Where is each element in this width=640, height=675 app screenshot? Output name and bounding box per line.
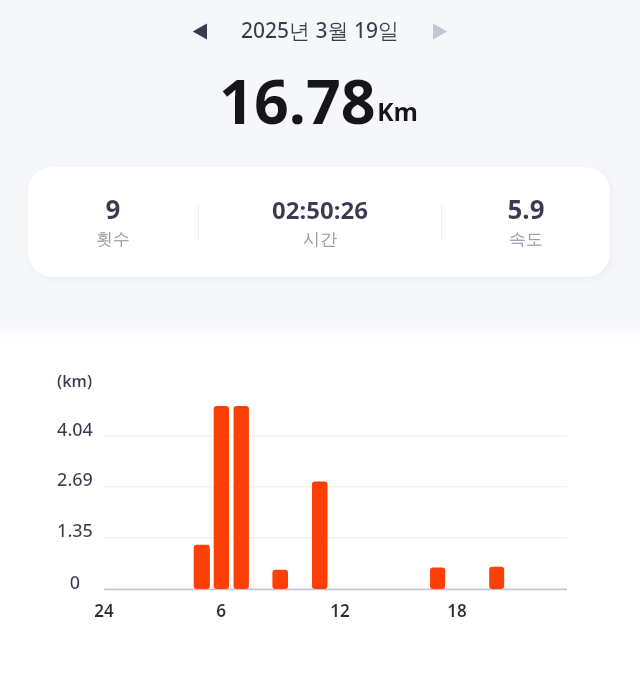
- button[interactable]: 5.9: [442, 167, 610, 277]
- staticText: 02:50:26: [199, 193, 441, 226]
- button[interactable]: 9: [28, 167, 198, 277]
- staticText: 0: [15, 570, 135, 595]
- staticText: 12: [300, 599, 380, 622]
- staticText: 5.9: [442, 191, 610, 226]
- button[interactable]: 02:50:26: [199, 167, 441, 277]
- staticText: 속도: [442, 229, 610, 250]
- staticText: 9: [28, 191, 198, 226]
- staticText: 4.04: [15, 417, 135, 442]
- button[interactable]: Next day: [421, 14, 456, 49]
- button[interactable]: Previous day: [183, 14, 218, 49]
- staticText: 1.35: [15, 518, 135, 543]
- staticText: 16.78: [219, 59, 376, 139]
- staticText: 6: [181, 599, 261, 622]
- staticText: Km: [377, 94, 418, 128]
- staticText: 2.69: [15, 467, 135, 492]
- staticText: 시간: [199, 229, 441, 250]
- staticText: 24: [64, 599, 144, 622]
- staticText: (km): [57, 370, 93, 392]
- staticText: 18: [417, 599, 497, 622]
- staticText: 2025년 3월 19일: [0, 16, 640, 45]
- staticText: 횟수: [28, 229, 198, 250]
